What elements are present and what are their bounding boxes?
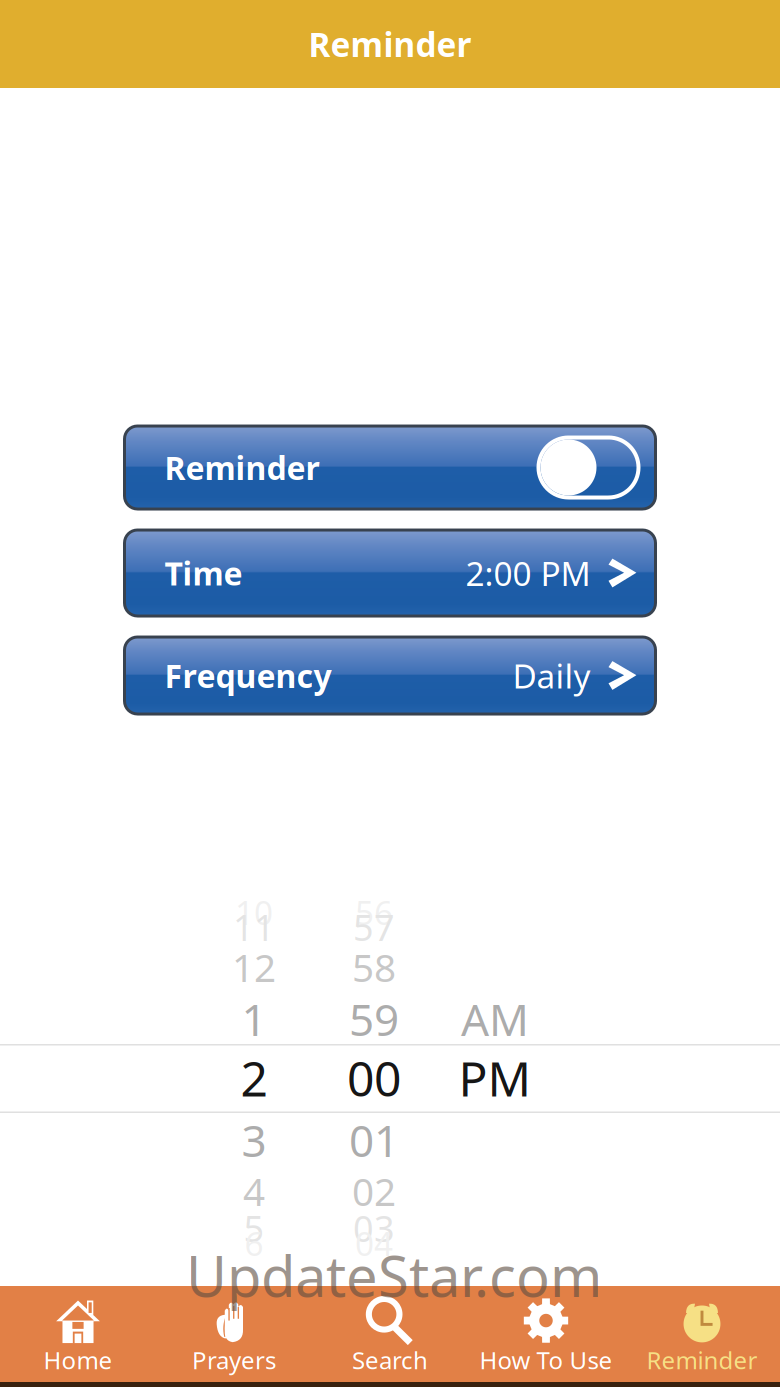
staticText: 00 <box>347 1046 401 1110</box>
staticText: 3 <box>241 1111 266 1169</box>
staticText: Search <box>352 1344 428 1376</box>
staticText: 59 <box>349 990 399 1048</box>
staticText: Time <box>164 552 242 594</box>
staticText: Daily <box>512 653 590 698</box>
staticText: AM <box>461 990 529 1048</box>
staticText: Prayers <box>192 1344 276 1376</box>
staticText: How To Use <box>479 1344 612 1376</box>
button[interactable]: Reminder <box>124 426 655 509</box>
staticText: 6 <box>244 1221 263 1265</box>
staticText: UpdateStar.com <box>186 1238 602 1312</box>
staticText: 56 <box>355 890 393 934</box>
staticText: Frequency <box>164 654 331 697</box>
staticText: Home <box>43 1344 112 1376</box>
staticText: 57 <box>353 903 395 951</box>
staticText: 4 <box>243 1165 265 1217</box>
button[interactable]: How To Use <box>468 1283 624 1384</box>
staticText: 10 <box>235 890 273 934</box>
staticText: 04 <box>355 1221 393 1265</box>
staticText: 2:00 PM <box>465 551 590 595</box>
staticText: 2 <box>240 1046 267 1110</box>
button[interactable]: Reminder <box>624 1283 780 1384</box>
staticText: 58 <box>352 941 396 993</box>
staticText: 03 <box>353 1204 395 1252</box>
staticText: Reminder <box>308 22 471 66</box>
staticText: 01 <box>349 1111 399 1169</box>
staticText: Reminder <box>164 446 319 489</box>
staticText: PM <box>458 1046 531 1110</box>
staticText: 1 <box>241 990 266 1048</box>
staticText: 02 <box>352 1165 396 1217</box>
staticText: 11 <box>233 903 275 951</box>
button[interactable]: Home <box>0 1283 156 1384</box>
staticText: 5 <box>243 1204 264 1252</box>
button[interactable]: Search <box>312 1283 468 1384</box>
staticText: 12 <box>232 941 276 993</box>
button[interactable]: Frequency <box>124 637 655 714</box>
staticText: Reminder <box>646 1344 757 1376</box>
button[interactable]: Time <box>124 530 655 616</box>
button[interactable]: Prayers <box>156 1283 312 1384</box>
